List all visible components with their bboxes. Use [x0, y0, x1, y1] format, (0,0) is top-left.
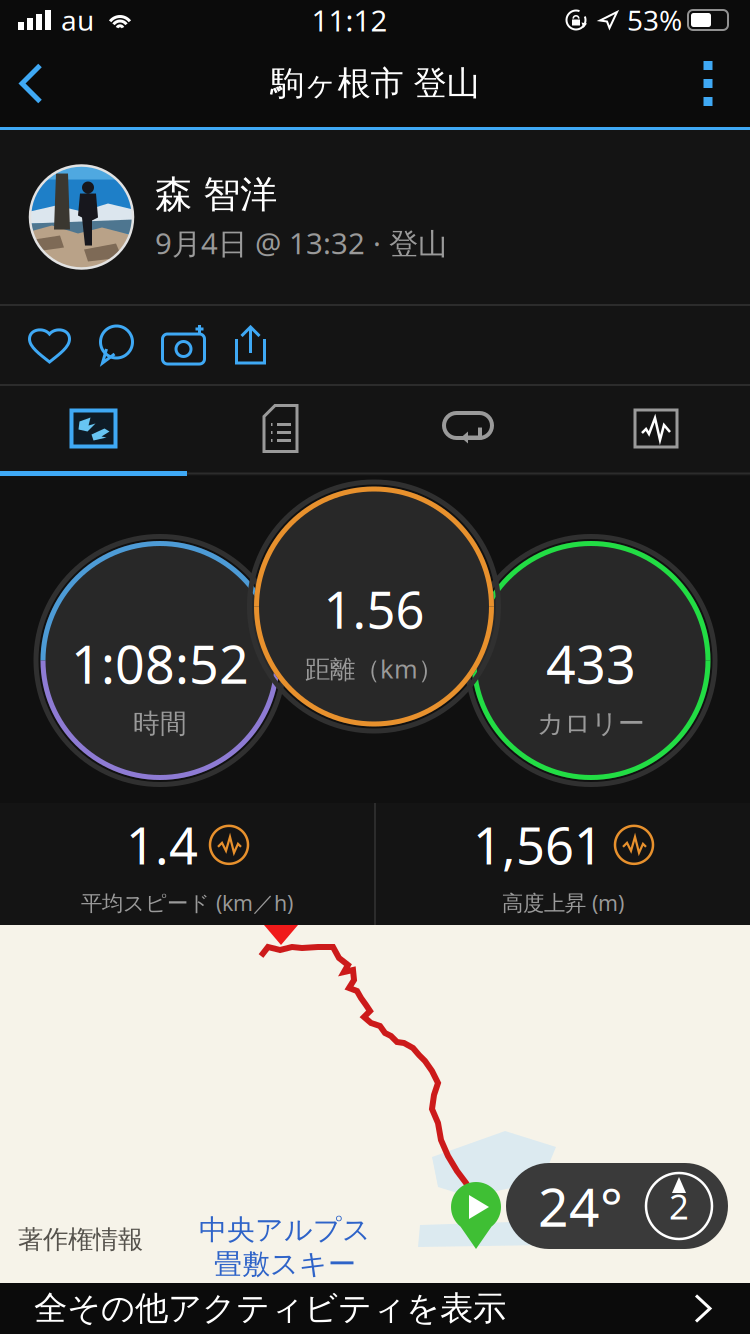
button[interactable]: Add photo	[150, 306, 217, 384]
staticText: 全その他アクティビティを表示	[34, 1288, 506, 1329]
staticText: 平均スピード (km／h)	[81, 888, 293, 917]
staticText: 2	[669, 1183, 689, 1229]
staticText: 森 智洋	[155, 172, 277, 217]
staticText: 中央アルプス	[199, 1213, 371, 1247]
staticText: 著作権情報	[18, 1224, 143, 1255]
staticText: 11:12	[311, 0, 387, 39]
button[interactable]: Comment	[83, 306, 150, 384]
staticText: 距離（km）	[305, 652, 443, 685]
button[interactable]: 森 智洋	[0, 130, 750, 304]
staticText: 畳敷スキー	[214, 1247, 356, 1281]
button[interactable]: Map	[0, 386, 187, 471]
button[interactable]: Graphs	[562, 386, 750, 471]
button[interactable]: 全その他アクティビティを表示	[0, 1283, 750, 1334]
button[interactable]: Like	[16, 306, 83, 384]
staticText: 433	[546, 629, 636, 698]
staticText: 9月4日 @ 13:32 · 登山	[155, 223, 447, 262]
staticText: 53%	[627, 1, 682, 39]
staticText: カロリー	[537, 707, 645, 740]
button[interactable]: Laps	[374, 386, 562, 471]
staticText: 1:08:52	[71, 629, 249, 698]
button[interactable]: More options	[680, 57, 736, 109]
button[interactable]: Details	[187, 386, 374, 471]
staticText: 1.4	[126, 811, 198, 878]
staticText: au	[61, 1, 94, 39]
staticText: 24°	[538, 1171, 623, 1241]
button[interactable]: Weather	[506, 1163, 728, 1249]
staticText: 1.56	[323, 575, 424, 643]
button[interactable]: Back	[14, 57, 70, 109]
staticText: 駒ヶ根市 登山	[270, 63, 479, 104]
staticText: 高度上昇 (m)	[502, 888, 624, 917]
staticText: 時間	[133, 707, 187, 740]
button[interactable]: Share	[217, 306, 284, 384]
staticText: 1,561	[473, 811, 603, 878]
